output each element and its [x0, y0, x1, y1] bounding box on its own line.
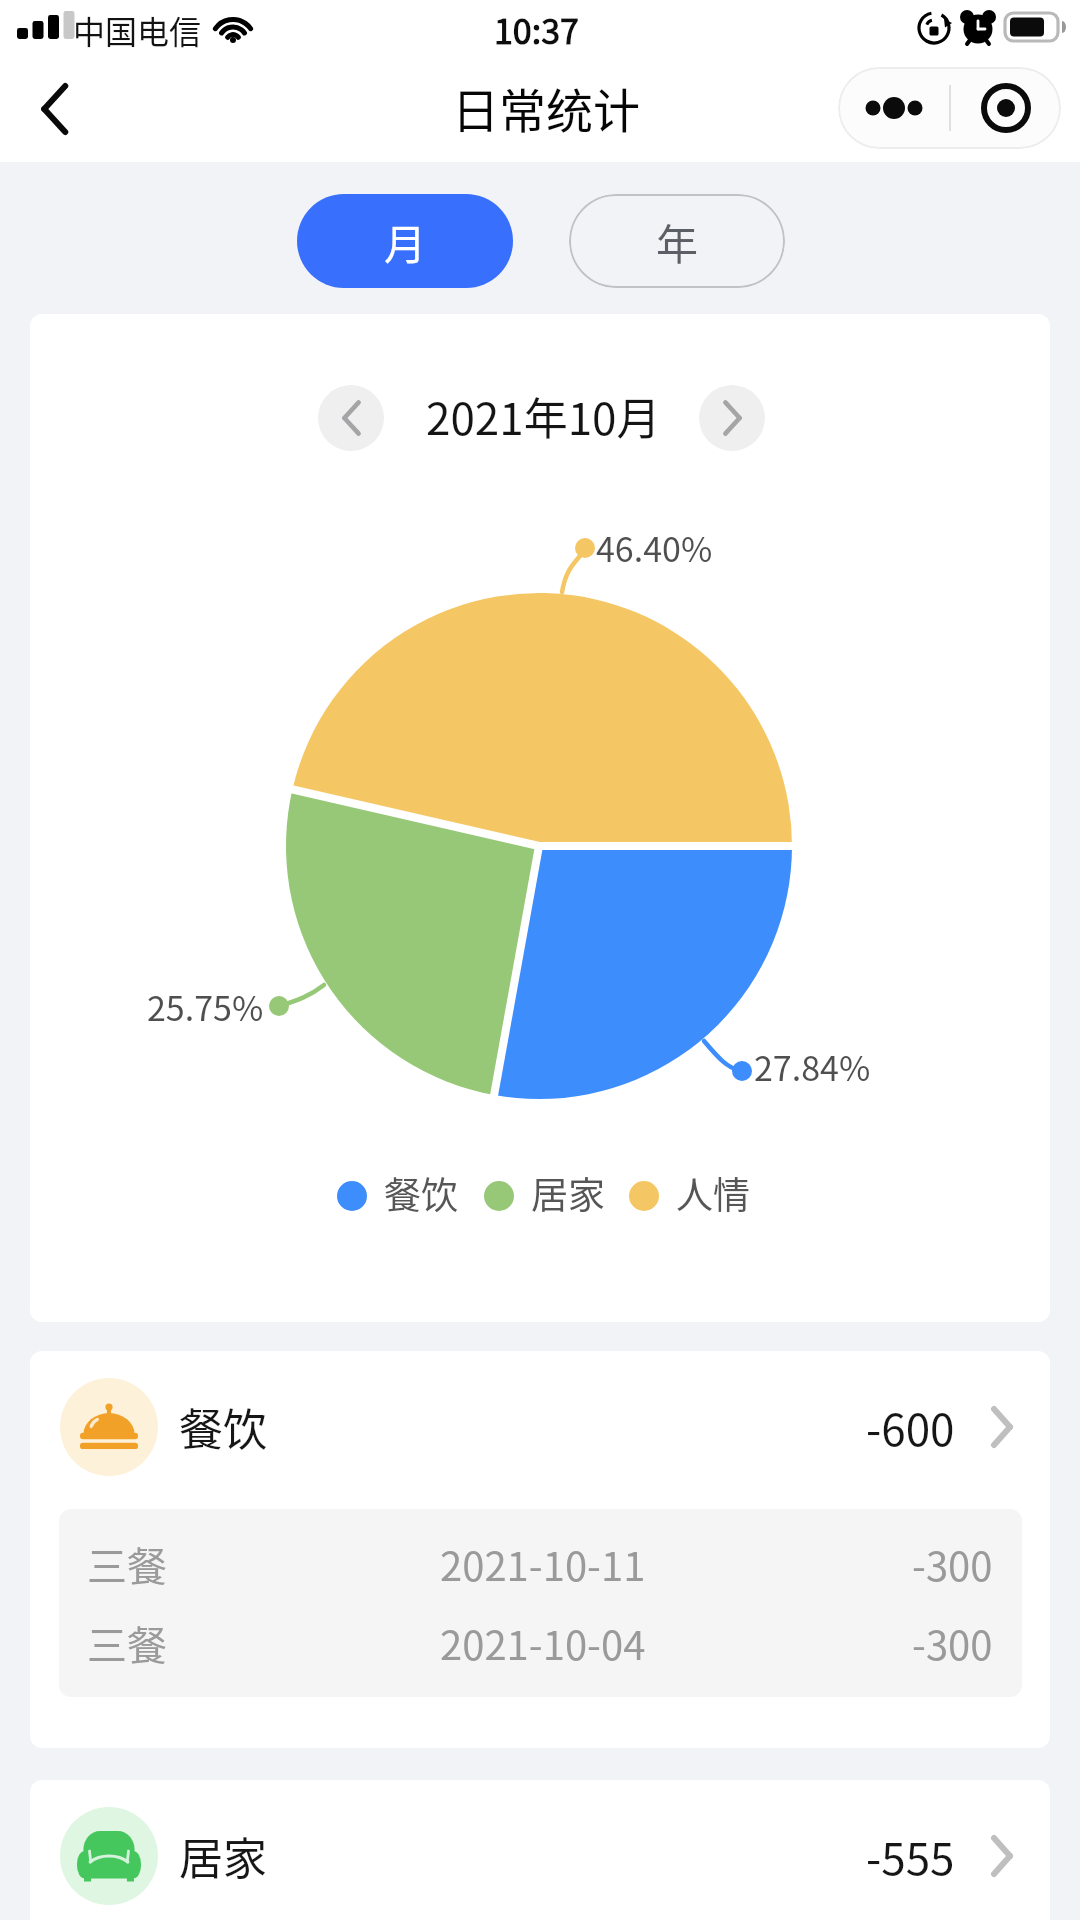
staticText: -600: [866, 1395, 955, 1459]
staticText: -300: [912, 1614, 993, 1672]
staticText: 年: [656, 211, 699, 272]
staticText: 10:37: [494, 5, 579, 54]
staticText: 居家: [531, 1166, 605, 1220]
button[interactable]: Back: [0, 56, 112, 162]
staticText: 27.84%: [754, 1042, 871, 1091]
staticText: 人情: [676, 1166, 750, 1220]
button[interactable]: 年: [569, 194, 785, 288]
staticText: 2021-10-04: [440, 1614, 646, 1672]
button[interactable]: Next month: [699, 385, 765, 451]
button[interactable]: 三餐: [59, 1524, 1022, 1603]
staticText: 日常统计: [452, 73, 640, 141]
staticText: 25.75%: [147, 982, 264, 1031]
staticText: 中国电信: [73, 7, 202, 53]
button[interactable]: Previous month: [318, 385, 384, 451]
staticText: 三餐: [87, 1614, 167, 1672]
staticText: 三餐: [87, 1535, 167, 1593]
button[interactable]: 月: [297, 194, 513, 288]
staticText: 46.40%: [596, 523, 713, 572]
button[interactable]: 三餐: [59, 1603, 1022, 1682]
staticText: 餐饮: [384, 1166, 458, 1220]
staticText: 2021-10-11: [440, 1535, 646, 1593]
button[interactable]: More options: [838, 67, 949, 149]
staticText: 2021年10月: [426, 384, 661, 448]
staticText: -300: [912, 1535, 993, 1593]
button[interactable]: Close mini program: [951, 67, 1061, 149]
staticText: 餐饮: [179, 1395, 267, 1459]
button[interactable]: 居家: [30, 1780, 1050, 1920]
staticText: 月: [384, 211, 427, 272]
button[interactable]: 餐饮: [30, 1351, 1050, 1503]
staticText: 居家: [179, 1824, 267, 1888]
staticText: -555: [866, 1824, 955, 1888]
